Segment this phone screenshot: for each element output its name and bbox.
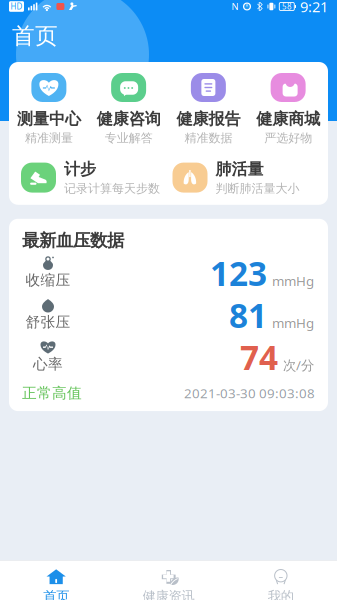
staticText: 首页: [12, 22, 58, 50]
staticText: 2021-03-30 09:03:08: [184, 384, 315, 402]
staticText: 正常高值: [22, 384, 82, 402]
staticText: 精准测量: [25, 131, 73, 145]
staticText: 收缩压: [25, 271, 70, 289]
button[interactable]: 健康报告: [168, 73, 248, 145]
staticText: 判断肺活量大小: [215, 181, 299, 196]
staticText: 首页: [43, 588, 69, 600]
staticText: 肺活量: [215, 159, 263, 179]
button[interactable]: 计步: [21, 159, 172, 196]
staticText: mmHg: [272, 272, 314, 290]
button[interactable]: 健康商城: [248, 73, 328, 145]
staticText: 74: [240, 335, 278, 379]
staticText: 健康咨询: [97, 109, 161, 129]
staticText: 123: [210, 251, 267, 295]
button[interactable]: 健康资讯: [112, 569, 225, 600]
staticText: 9:21: [300, 0, 328, 16]
staticText: 最新血压数据: [22, 230, 124, 251]
staticText: 专业解答: [105, 131, 153, 145]
staticText: 58: [282, 1, 292, 12]
staticText: HD: [10, 1, 22, 12]
staticText: 健康商城: [256, 109, 320, 129]
staticText: 我的: [268, 588, 294, 600]
staticText: mmHg: [272, 314, 314, 332]
button[interactable]: 测量中心: [9, 73, 89, 145]
staticText: 精准数据: [184, 131, 232, 145]
button[interactable]: 我的: [225, 569, 337, 600]
staticText: 健康报告: [176, 109, 240, 129]
button[interactable]: 首页: [0, 569, 112, 600]
staticText: N: [231, 0, 238, 13]
staticText: 计步: [64, 159, 96, 179]
staticText: 记录计算每天步数: [64, 181, 160, 196]
staticText: 81: [229, 293, 267, 337]
button[interactable]: 健康咨询: [89, 73, 169, 145]
staticText: 次/分: [283, 356, 314, 374]
staticText: 测量中心: [17, 109, 81, 129]
staticText: 心率: [33, 355, 63, 373]
staticText: 舒张压: [25, 313, 70, 331]
button[interactable]: 肺活量: [172, 159, 324, 196]
staticText: 健康资讯: [142, 588, 194, 600]
staticText: 严选好物: [264, 131, 312, 145]
